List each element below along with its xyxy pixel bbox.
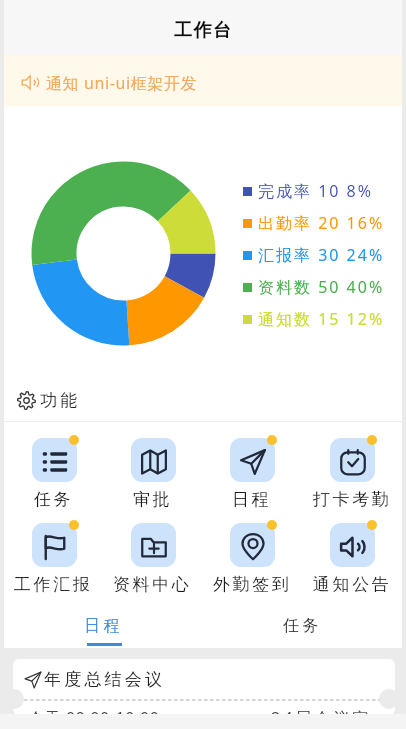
button[interactable]: 通知公告	[302, 523, 402, 608]
button[interactable]: 年度总结会议	[13, 659, 395, 715]
staticText: 打卡考勤	[313, 489, 392, 510]
button[interactable]: 外勤签到	[202, 523, 302, 608]
staticText: 今天 09:00-10:00	[28, 707, 160, 715]
button[interactable]: 工作汇报	[4, 523, 103, 608]
staticText: 资料数 50 40%	[258, 276, 385, 298]
staticText: 资料中心	[113, 574, 192, 595]
staticText: 通知公告	[313, 574, 392, 595]
button[interactable]: 通知 uni-ui框架开发	[4, 55, 402, 106]
staticText: 任务	[34, 489, 74, 510]
staticText: 功能	[39, 390, 79, 411]
staticText: 日程	[84, 616, 124, 636]
staticText: 审批	[133, 489, 173, 510]
staticText: 通知 uni-ui框架开发	[46, 72, 198, 94]
staticText: 汇报率 30 24%	[258, 244, 385, 266]
staticText: 完成率 10 8%	[258, 180, 374, 202]
staticText: 年度总结会议	[44, 669, 166, 690]
staticText: 任务	[283, 616, 323, 636]
button[interactable]: 打卡考勤	[302, 438, 402, 523]
button[interactable]: 任务	[203, 604, 402, 648]
button[interactable]: 任务	[4, 438, 103, 523]
button[interactable]: 日程	[4, 604, 203, 648]
staticText: 24层会议室	[271, 707, 372, 715]
button[interactable]: 日程	[202, 438, 302, 523]
button[interactable]: 审批	[103, 438, 202, 523]
staticText: 外勤签到	[213, 574, 292, 595]
staticText: 工作汇报	[14, 574, 93, 595]
staticText: 工作台	[174, 19, 233, 42]
staticText: 日程	[232, 489, 272, 510]
button[interactable]: 资料中心	[103, 523, 202, 608]
staticText: 出勤率 20 16%	[258, 212, 385, 234]
staticText: 通知数 15 12%	[258, 308, 385, 330]
